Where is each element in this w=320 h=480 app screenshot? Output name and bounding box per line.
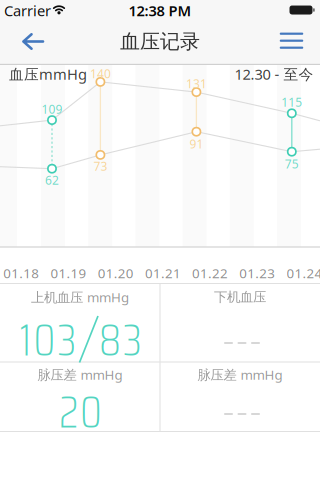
- staticText: 01.24: [286, 264, 320, 282]
- staticText: 75: [285, 156, 299, 172]
- staticText: 109: [41, 101, 62, 117]
- staticText: 91: [189, 136, 203, 152]
- staticText: 脉压差 mmHg: [37, 366, 122, 383]
- staticText: Carrier: [4, 1, 51, 20]
- staticText: 脉压差 mmHg: [197, 366, 282, 383]
- staticText: 01.18: [3, 264, 39, 282]
- staticText: 12.30 - 至今: [234, 64, 313, 84]
- button[interactable]: Menu: [273, 26, 309, 56]
- staticText: 103: [19, 305, 76, 375]
- staticText: 115: [281, 94, 302, 110]
- staticText: 73: [93, 158, 107, 174]
- staticText: 01.20: [98, 264, 134, 282]
- staticText: 131: [186, 76, 207, 92]
- staticText: 下机血压: [214, 289, 266, 305]
- staticText: 140: [90, 66, 111, 82]
- staticText: 血压mmHg: [9, 64, 87, 84]
- button[interactable]: Back: [0, 30, 56, 52]
- staticText: 01.23: [239, 264, 275, 282]
- staticText: 83: [99, 305, 142, 375]
- staticText: 01.22: [192, 264, 228, 282]
- staticText: 62: [45, 172, 59, 188]
- staticText: 12:38 PM: [128, 1, 191, 20]
- staticText: 20: [59, 377, 102, 447]
- staticText: 01.21: [145, 264, 181, 282]
- staticText: 上机血压 mmHg: [31, 288, 129, 306]
- staticText: 血压记录: [120, 29, 200, 54]
- staticText: 01.19: [50, 264, 86, 282]
